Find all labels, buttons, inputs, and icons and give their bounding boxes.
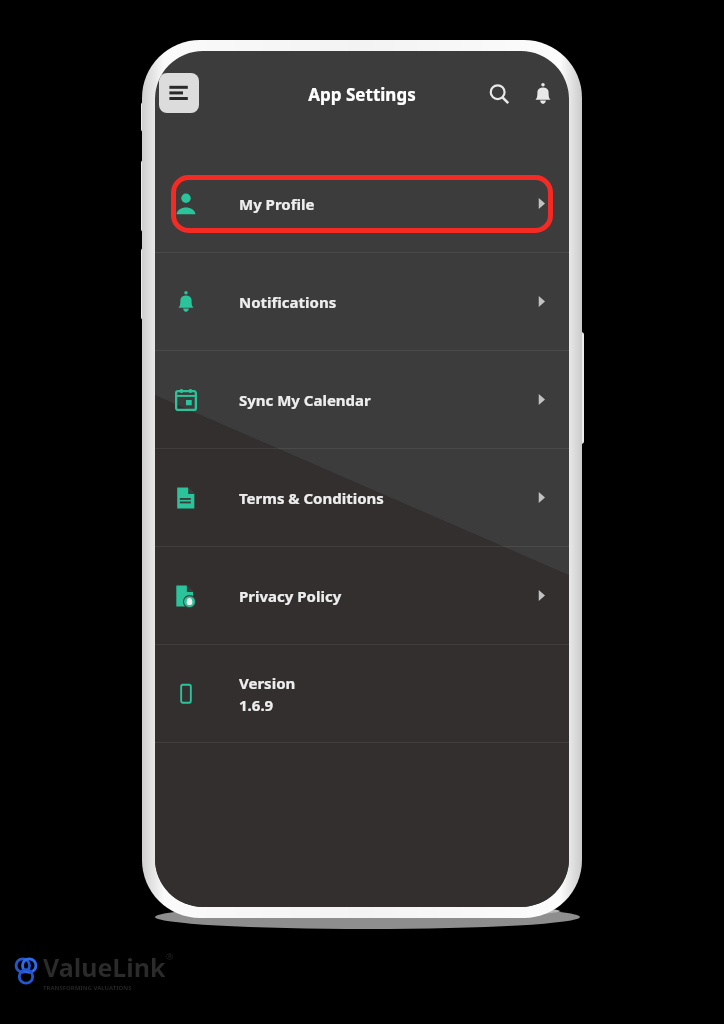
button[interactable]: My Profile xyxy=(155,155,569,252)
staticText: Terms & Conditions xyxy=(239,488,384,508)
button[interactable]: Open navigation menu xyxy=(159,73,199,113)
button[interactable]: Privacy Policy xyxy=(155,547,569,644)
staticText: My Profile xyxy=(239,194,315,214)
staticText: Notifications xyxy=(239,292,337,312)
staticText: ValueLink xyxy=(43,950,166,984)
button[interactable]: Sync My Calendar xyxy=(155,351,569,448)
staticText: App Settings xyxy=(308,83,416,106)
staticText: ® xyxy=(166,950,174,962)
button[interactable]: Notifications xyxy=(155,253,569,350)
staticText: Version xyxy=(239,673,296,693)
staticText: Sync My Calendar xyxy=(239,390,371,410)
staticText: TRANSFORMING VALUATIONS xyxy=(43,984,132,992)
button[interactable]: Terms & Conditions xyxy=(155,449,569,546)
button[interactable]: Notifications xyxy=(523,74,563,114)
staticText: Privacy Policy xyxy=(239,586,342,606)
staticText: 1.6.9 xyxy=(239,695,274,715)
button[interactable]: Search xyxy=(479,74,519,114)
